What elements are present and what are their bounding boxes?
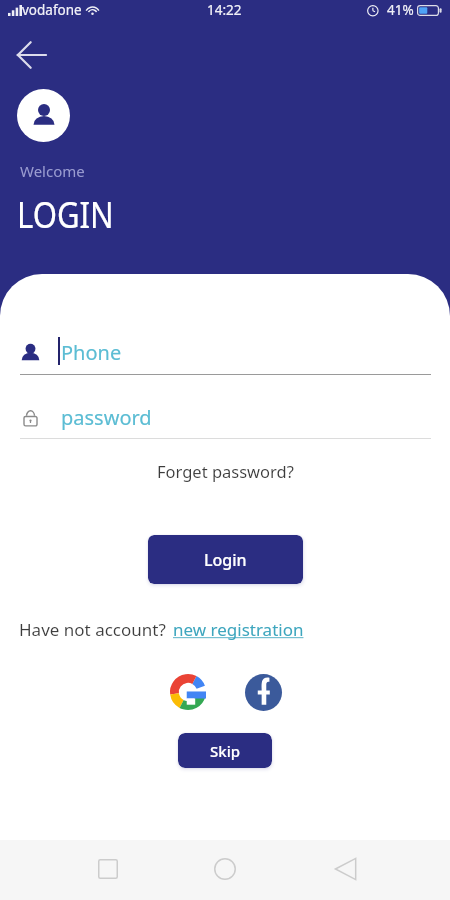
button[interactable]: Forget password? [151, 457, 300, 485]
staticText: password [61, 404, 152, 431]
button[interactable]: Back [11, 35, 51, 75]
button[interactable]: new registration [173, 618, 304, 641]
staticText: Have not account? [19, 618, 166, 641]
button[interactable]: Sign in with Google [168, 672, 208, 712]
button[interactable]: Login [148, 535, 303, 584]
button[interactable]: Recent apps [78, 840, 138, 900]
staticText: vodafone [22, 1, 82, 19]
staticText: Forget password? [157, 460, 294, 482]
button[interactable]: Back [316, 840, 376, 900]
staticText: new registration [173, 618, 304, 641]
staticText: Welcome [20, 161, 85, 181]
staticText: LOGIN [17, 188, 114, 238]
button[interactable]: Skip [178, 733, 272, 768]
button[interactable]: Sign in with Facebook [243, 672, 283, 712]
button[interactable]: Home [195, 840, 255, 900]
staticText: Phone [61, 339, 122, 366]
button[interactable]: password [0, 398, 450, 436]
staticText: Skip [210, 741, 240, 761]
button[interactable]: Phone [0, 334, 450, 372]
staticText: Login [204, 549, 247, 571]
staticText: 14:22 [207, 1, 242, 19]
staticText: 41% [387, 1, 414, 19]
